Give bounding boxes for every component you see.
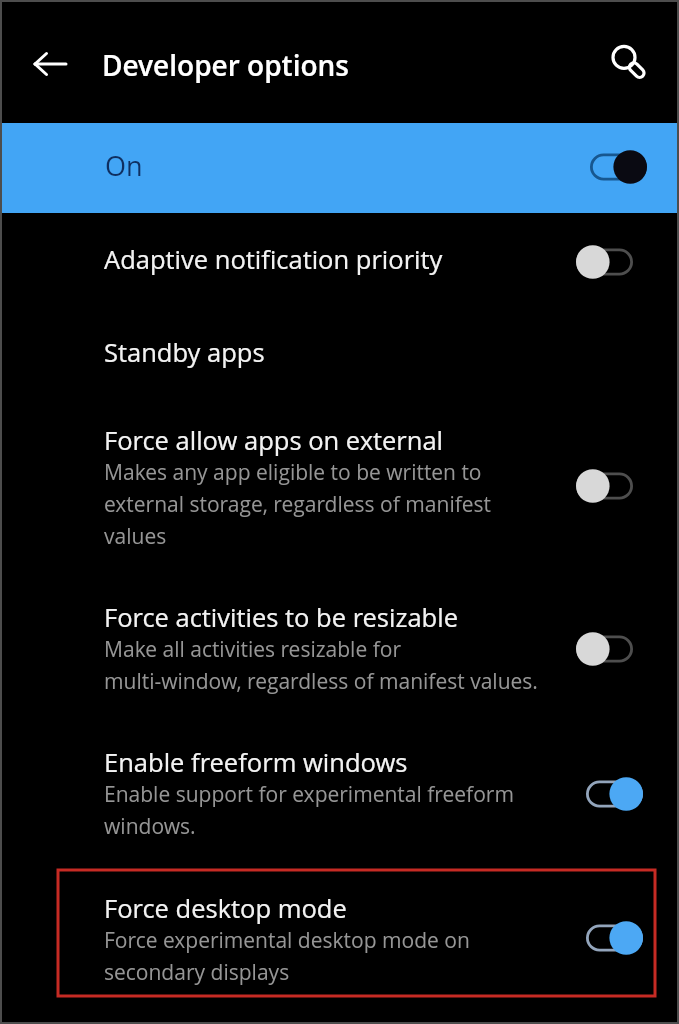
staticText: On [105,147,143,184]
staticText: Adaptive notification priority [104,242,443,277]
button[interactable]: Switch on [586,921,643,955]
staticText: Force activities to be resizable [104,600,458,635]
button[interactable]: Enable freeform windows [0,723,679,869]
button[interactable]: Force activities to be resizable [0,578,679,728]
button[interactable]: Force allow apps on external [0,400,679,578]
button[interactable]: Switch off [576,245,633,279]
staticText: Force experimental desktop mode on secon… [104,926,548,986]
button[interactable]: Switch off [576,469,633,503]
button[interactable]: Search [600,34,648,82]
button[interactable]: Navigate back [26,40,74,88]
staticText: Enable freeform windows [104,745,408,780]
button[interactable]: Switch off [576,632,633,666]
button[interactable]: Switch on [590,150,647,184]
staticText: Enable support for experimental freeform… [104,780,548,840]
staticText: Makes any app eligible to be written to … [104,458,548,550]
staticText: Force allow apps on external [104,423,444,458]
staticText: Make all activities resizable for multi-… [104,635,538,695]
staticText: Force desktop mode [104,891,347,926]
staticText: Standby apps [104,335,265,370]
button[interactable]: On [0,123,679,213]
button[interactable]: Standby apps [0,310,679,400]
button[interactable]: Switch on [586,777,643,811]
button[interactable]: Adaptive notification priority [0,213,679,310]
button[interactable]: Force desktop mode [0,869,679,999]
staticText: Developer options [102,46,349,84]
